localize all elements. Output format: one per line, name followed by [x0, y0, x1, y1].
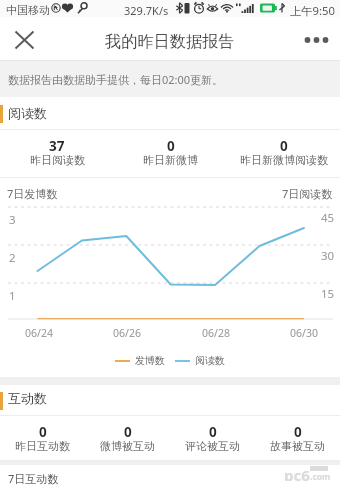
staticText: 0: [209, 423, 217, 441]
staticText: 昨日新微博阅读数: [240, 153, 328, 167]
staticText: 0: [294, 423, 302, 441]
button[interactable]: 0: [227, 130, 340, 178]
button[interactable]: 0: [114, 130, 227, 178]
staticText: 评论被互动: [185, 439, 240, 453]
staticText: 上午9:50: [290, 3, 336, 18]
button[interactable]: Close: [9, 25, 39, 55]
staticText: 发博数: [135, 354, 165, 367]
staticText: 37: [49, 137, 65, 155]
staticText: 昨日互动数: [15, 439, 70, 453]
staticText: 昨日阅读数: [30, 153, 85, 167]
staticText: 阅读数: [195, 354, 225, 367]
staticText: 互动数: [8, 390, 47, 406]
staticText: 中国移动: [6, 3, 50, 17]
button[interactable]: 0: [170, 416, 255, 461]
staticText: 30: [321, 248, 335, 264]
staticText: 0: [167, 137, 175, 155]
staticText: 45: [321, 210, 335, 226]
staticText: pc6: [284, 465, 310, 481]
staticText: 故事被互动: [270, 439, 325, 453]
staticText: 数据报告由数据助手提供，每日02:00更新。: [8, 72, 224, 87]
staticText: 06/28: [202, 326, 230, 340]
button[interactable]: 0: [255, 416, 340, 461]
staticText: 06/26: [113, 326, 141, 340]
staticText: 7日阅读数: [282, 186, 333, 201]
button[interactable]: 0: [0, 416, 85, 461]
staticText: 7日发博数: [7, 186, 58, 201]
staticText: 昨日新微博: [143, 153, 198, 167]
staticText: 阅读数: [8, 105, 47, 121]
button[interactable]: 0: [85, 416, 170, 461]
button[interactable]: More options: [298, 25, 334, 55]
staticText: 0: [280, 137, 288, 155]
staticText: 0: [124, 423, 132, 441]
button[interactable]: 37: [0, 130, 114, 178]
staticText: 3: [9, 212, 16, 228]
staticText: 06/30: [290, 326, 318, 340]
staticText: 15: [321, 286, 335, 302]
staticText: 1: [9, 288, 16, 304]
staticText: 我的昨日数据报告: [105, 31, 235, 51]
staticText: .com: [310, 471, 331, 482]
staticText: 06/24: [25, 326, 53, 340]
staticText: 微博被互动: [100, 439, 155, 453]
staticText: 329.7K/s: [124, 3, 169, 18]
staticText: 0: [39, 423, 47, 441]
staticText: 7日互动数: [8, 471, 59, 486]
staticText: 2: [9, 250, 16, 266]
